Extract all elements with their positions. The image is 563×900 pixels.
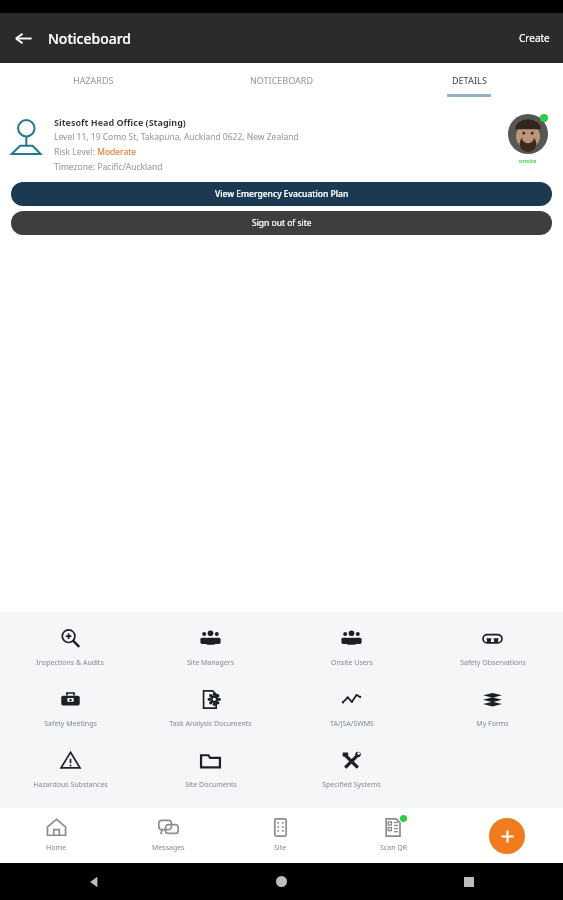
staticText: Sitesoft Head Office (Staging) [54,116,186,128]
button[interactable]: Task Analysis Documents [140,682,281,743]
button[interactable]: My Forms [422,682,563,743]
button[interactable]: Safety Meetings [0,682,140,743]
button[interactable]: Scan QR [337,808,450,863]
button[interactable]: Add [489,818,525,854]
staticText: Noticeboard [48,29,132,48]
button[interactable]: Profile [501,114,555,165]
staticText: My Forms [476,719,509,729]
button[interactable]: Create [506,17,563,59]
staticText: Scan QR [380,843,408,853]
staticText: DETAILS [452,74,487,86]
staticText: TA/JSA/SWMS [330,719,374,729]
staticText: NOTICEBOARD [250,74,313,86]
button[interactable]: Inspections & Audits [0,621,140,682]
staticText: Site Documents [185,780,237,790]
button[interactable]: HAZARDS [0,63,187,107]
button[interactable]: Specified Systems [281,743,422,804]
button[interactable]: Site [224,808,337,863]
button[interactable]: Site Managers [140,621,281,682]
staticText: Home [46,843,66,853]
staticText: Safety Meetings [44,719,97,729]
button[interactable]: Messages [112,808,224,863]
staticText: HAZARDS [73,74,114,86]
staticText: Create [519,31,550,45]
staticText: Safety Observations [460,658,526,668]
button[interactable]: NOTICEBOARD [187,63,375,107]
button[interactable]: Sign out of site [11,211,552,235]
staticText: Risk Level: Moderate [54,146,137,158]
staticText: Site Managers [187,658,234,668]
staticText: Timezone: Pacific/Auckland [54,161,163,173]
staticText: Messages [152,843,185,853]
staticText: Site [274,843,287,853]
staticText: Hazardous Substances [33,780,108,790]
staticText: Level 11, 19 Como St, Takapuna, Auckland… [54,131,299,143]
button[interactable]: Safety Observations [422,621,563,682]
button[interactable]: DETAILS [375,63,563,107]
button[interactable]: TA/JSA/SWMS [281,682,422,743]
staticText: Onsite Users [331,658,373,668]
staticText: Inspections & Audits [36,658,104,668]
staticText: Sign out of site [252,217,312,229]
staticText: Task Analysis Documents [169,719,252,729]
button[interactable]: Back [0,15,46,61]
button[interactable]: Site Documents [140,743,281,804]
button[interactable]: View Emergency Evacuation Plan [11,182,552,206]
staticText: onsite [519,157,537,165]
staticText: View Emergency Evacuation Plan [215,188,349,200]
button[interactable]: Onsite Users [281,621,422,682]
button[interactable]: Hazardous Substances [0,743,140,804]
button[interactable]: Home [0,808,112,863]
staticText: Specified Systems [322,780,381,790]
